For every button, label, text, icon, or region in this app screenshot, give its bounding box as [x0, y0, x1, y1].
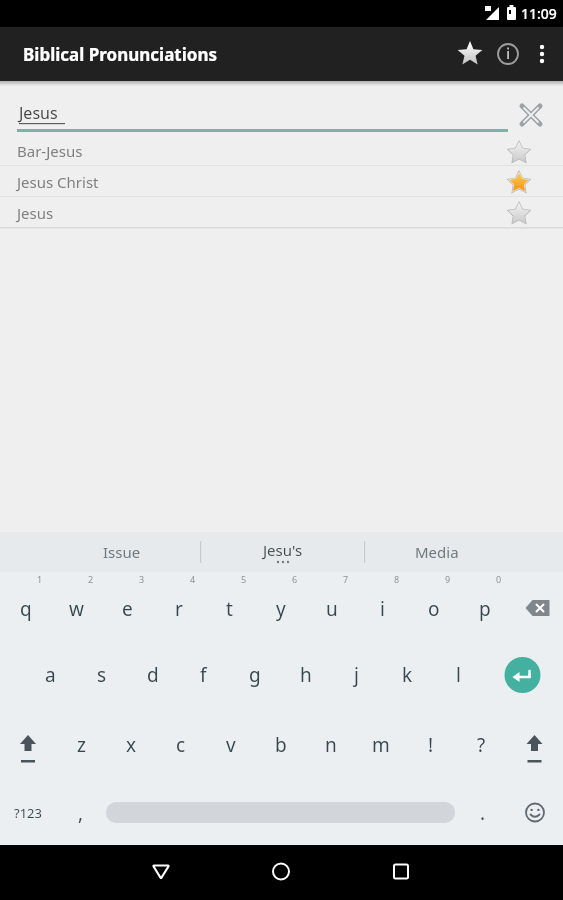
staticText: Jesus [19, 102, 58, 124]
button[interactable] [484, 640, 563, 710]
staticText: b [275, 732, 287, 758]
staticText: k [402, 662, 413, 688]
staticText: w [69, 596, 84, 622]
button[interactable] [488, 34, 528, 74]
staticText: ? [477, 732, 486, 758]
staticText: ?123 [14, 804, 42, 822]
staticText: 7 [343, 573, 349, 585]
staticText: Jesus [17, 203, 54, 223]
staticText: 8 [394, 573, 400, 585]
staticText: g [249, 662, 261, 688]
staticText: q [20, 596, 32, 622]
button[interactable]: 8 [357, 572, 408, 640]
button[interactable]: c [156, 710, 206, 780]
staticText: m [372, 732, 390, 758]
button[interactable]: k [382, 640, 433, 710]
staticText: 4 [190, 573, 196, 585]
button[interactable]: g [229, 640, 280, 710]
staticText: , [78, 800, 84, 826]
button[interactable] [0, 710, 56, 780]
staticText: s [97, 662, 107, 688]
staticText: z [77, 732, 86, 758]
button[interactable]: ? [456, 710, 506, 780]
button[interactable]: . [455, 780, 511, 845]
staticText: 9 [445, 573, 451, 585]
button[interactable]: Jesu's [201, 532, 364, 572]
staticText: 3 [139, 573, 145, 585]
button[interactable]: 2 [51, 572, 102, 640]
staticText: d [147, 662, 159, 688]
button[interactable]: 9 [408, 572, 459, 640]
button[interactable]: , [56, 780, 106, 845]
button[interactable]: Media [365, 532, 563, 572]
staticText: u [326, 596, 338, 622]
staticText: t [226, 596, 233, 622]
staticText: Media [415, 542, 459, 562]
staticText: h [300, 662, 312, 688]
staticText: 0 [496, 573, 502, 585]
button[interactable] [375, 845, 563, 900]
button[interactable]: Jesus Christ [0, 166, 563, 197]
button[interactable] [506, 710, 563, 780]
button[interactable]: s [76, 640, 127, 710]
staticText: c [176, 732, 186, 758]
staticText: 11:09 [521, 4, 557, 23]
staticText: 5 [241, 573, 247, 585]
button[interactable] [187, 845, 375, 900]
button[interactable]: h [280, 640, 331, 710]
button[interactable]: d [127, 640, 178, 710]
button[interactable]: b [256, 710, 306, 780]
button[interactable] [448, 32, 492, 76]
button[interactable]: ! [406, 710, 456, 780]
button[interactable]: Issue [0, 532, 200, 572]
button[interactable]: 3 [102, 572, 153, 640]
staticText: 1 [37, 573, 43, 585]
button[interactable]: 4 [153, 572, 204, 640]
staticText: Bar-Jesus [17, 141, 83, 161]
staticText: Biblical Pronunciations [23, 43, 218, 66]
button[interactable] [511, 780, 563, 845]
button[interactable]: z [56, 710, 106, 780]
staticText: f [200, 662, 207, 688]
staticText: v [226, 732, 236, 758]
staticText: 6 [292, 573, 298, 585]
button[interactable]: v [206, 710, 256, 780]
button[interactable]: 6 [255, 572, 306, 640]
staticText: r [175, 596, 183, 622]
button[interactable]: ?123 [0, 780, 56, 845]
staticText: j [354, 662, 359, 688]
staticText: . [480, 800, 486, 826]
staticText: Issue [103, 542, 141, 562]
button[interactable]: j [331, 640, 382, 710]
staticText: Jesus Christ [17, 172, 99, 192]
button[interactable] [510, 572, 563, 640]
button[interactable]: a [25, 640, 76, 710]
button[interactable]: 7 [306, 572, 357, 640]
staticText: o [428, 596, 440, 622]
staticText: l [456, 662, 461, 688]
button[interactable]: Jesus [0, 197, 563, 228]
staticText: p [479, 596, 491, 622]
button[interactable] [0, 845, 187, 900]
button[interactable]: x [106, 710, 156, 780]
staticText: Jesu's [263, 540, 303, 560]
staticText: i [380, 596, 385, 622]
button[interactable]: m [356, 710, 406, 780]
button[interactable]: l [433, 640, 484, 710]
staticText: ! [428, 732, 434, 758]
staticText: a [45, 662, 56, 688]
staticText: y [276, 596, 286, 622]
button[interactable]: f [178, 640, 229, 710]
button[interactable]: 1 [0, 572, 51, 640]
button[interactable]: Bar-Jesus [0, 135, 563, 166]
button[interactable]: n [306, 710, 356, 780]
staticText: x [126, 732, 137, 758]
button[interactable]: 0 [459, 572, 510, 640]
button[interactable]: 5 [204, 572, 255, 640]
staticText: e [122, 596, 133, 622]
button[interactable] [524, 36, 560, 72]
staticText: 2 [88, 573, 94, 585]
staticText: n [325, 732, 337, 758]
